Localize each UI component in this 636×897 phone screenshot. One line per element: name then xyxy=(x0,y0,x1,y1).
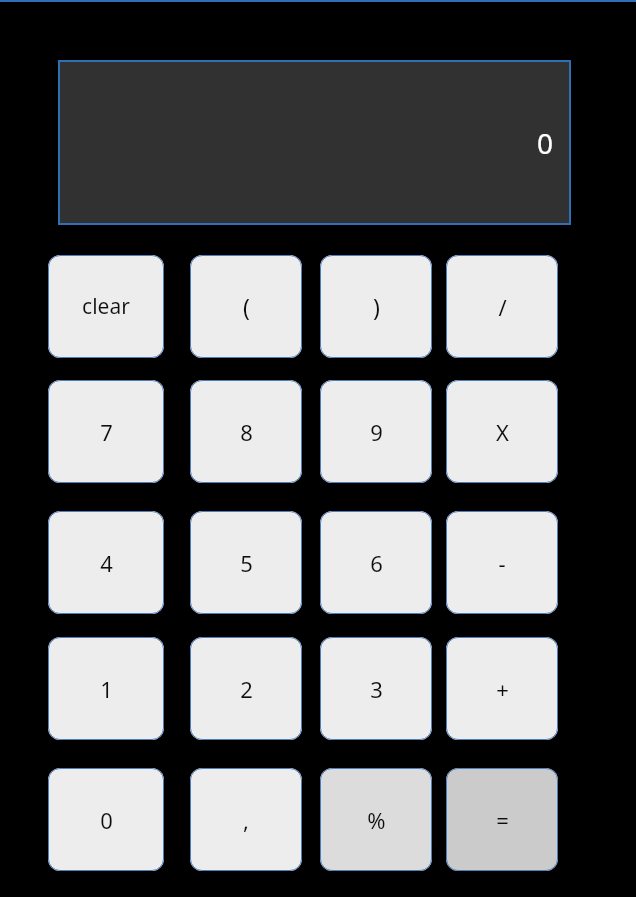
button[interactable]: 2 xyxy=(190,637,302,740)
staticText: 0 xyxy=(536,124,553,162)
staticText: 9 xyxy=(370,417,383,447)
staticText: 8 xyxy=(240,417,253,447)
button[interactable]: 8 xyxy=(190,380,302,483)
staticText: X xyxy=(496,417,509,447)
button[interactable]: 6 xyxy=(320,511,432,614)
staticText: 6 xyxy=(370,548,383,578)
button[interactable]: , xyxy=(190,768,302,871)
button[interactable]: + xyxy=(446,637,558,740)
staticText: 3 xyxy=(370,674,383,704)
staticText: / xyxy=(498,292,507,322)
button[interactable]: 4 xyxy=(48,511,164,614)
staticText: ( xyxy=(243,291,250,322)
button[interactable]: X xyxy=(446,380,558,483)
staticText: , xyxy=(243,805,249,835)
button[interactable]: % xyxy=(320,768,432,871)
button[interactable]: 0 xyxy=(58,60,571,225)
staticText: ) xyxy=(373,291,380,322)
button[interactable]: clear xyxy=(48,255,164,358)
button[interactable]: ) xyxy=(320,255,432,358)
button[interactable]: - xyxy=(446,511,558,614)
staticText: 4 xyxy=(100,548,113,578)
button[interactable]: 0 xyxy=(48,768,164,871)
staticText: clear xyxy=(82,292,130,321)
staticText: 7 xyxy=(100,417,113,447)
staticText: = xyxy=(496,805,509,835)
button[interactable]: ( xyxy=(190,255,302,358)
button[interactable]: 9 xyxy=(320,380,432,483)
button[interactable]: 3 xyxy=(320,637,432,740)
staticText: % xyxy=(367,805,386,835)
button[interactable]: 7 xyxy=(48,380,164,483)
button[interactable]: 5 xyxy=(190,511,302,614)
button[interactable]: 1 xyxy=(48,637,164,740)
staticText: 1 xyxy=(100,674,113,704)
staticText: - xyxy=(498,548,506,578)
staticText: 0 xyxy=(100,805,113,835)
staticText: + xyxy=(496,674,509,704)
staticText: 2 xyxy=(240,674,253,704)
button[interactable]: / xyxy=(446,255,558,358)
button[interactable]: = xyxy=(446,768,558,871)
staticText: 5 xyxy=(240,548,253,578)
